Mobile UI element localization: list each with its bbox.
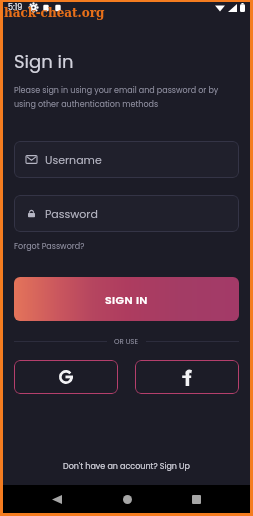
button[interactable]: Password xyxy=(14,195,239,232)
staticText: Don't have an account? Sign Up xyxy=(63,461,190,472)
staticText: Username xyxy=(45,152,102,167)
staticText: 5:19 xyxy=(8,2,23,13)
button[interactable]: SIGN IN xyxy=(14,277,239,321)
button[interactable]: Username xyxy=(14,141,239,178)
staticText: Forgot Password? xyxy=(14,241,85,252)
staticText: Password xyxy=(45,206,98,221)
staticText: hack-cheat.org xyxy=(4,6,105,20)
button[interactable]: Forgot Password? xyxy=(14,241,85,252)
button[interactable]: Sign in with Google xyxy=(14,360,118,394)
button[interactable]: Home xyxy=(112,485,142,513)
staticText: Please sign in using your email and pass… xyxy=(14,85,239,109)
staticText: OR USE xyxy=(114,337,139,347)
button[interactable]: Sign in with Facebook xyxy=(135,360,239,394)
button[interactable]: Don't have an account? Sign Up xyxy=(14,461,239,472)
staticText: SIGN IN xyxy=(105,292,148,307)
staticText: Sign in xyxy=(14,49,74,74)
button[interactable]: Back xyxy=(42,485,72,513)
button[interactable]: Recent apps xyxy=(181,485,211,513)
